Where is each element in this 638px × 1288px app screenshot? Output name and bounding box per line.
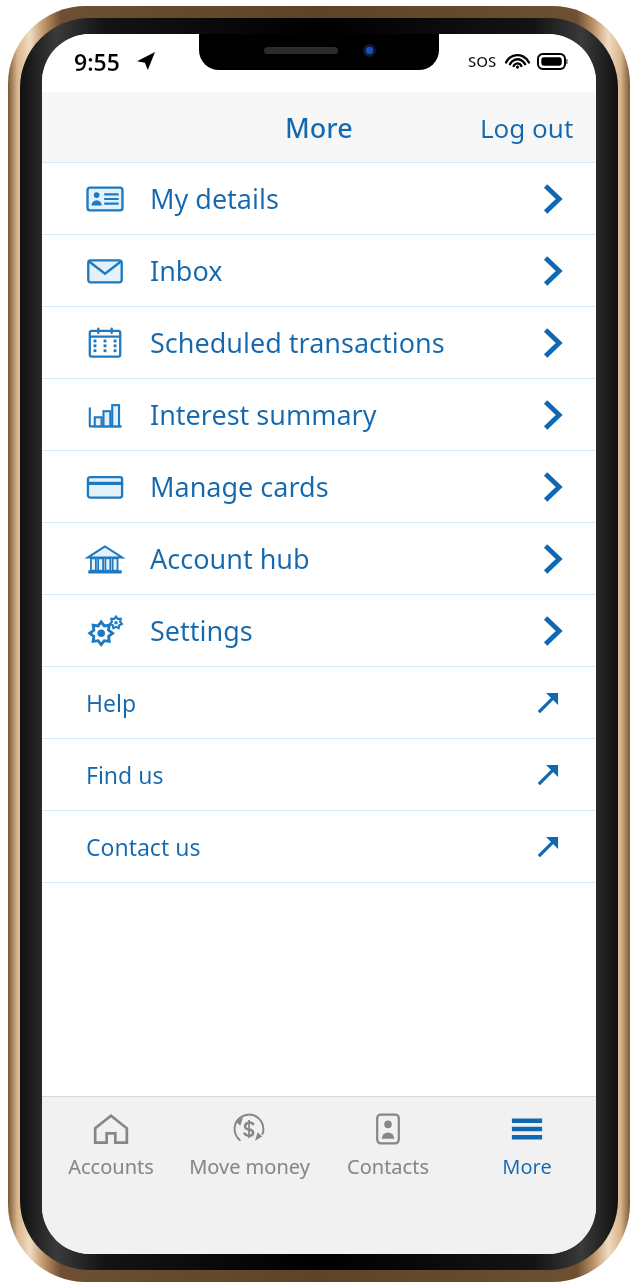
button[interactable]: More — [457, 1097, 596, 1192]
staticText: Accounts — [68, 1153, 154, 1180]
button[interactable]: Account hub — [42, 523, 596, 594]
staticText: Inbox — [150, 252, 544, 289]
staticText: 9:55 — [74, 46, 120, 77]
button[interactable]: Accounts — [42, 1097, 180, 1192]
button[interactable]: Contact us — [42, 811, 596, 882]
staticText: Contacts — [347, 1153, 429, 1180]
button[interactable]: My details — [42, 163, 596, 234]
button[interactable]: Help — [42, 667, 596, 738]
button[interactable]: Log out — [458, 98, 596, 157]
button[interactable]: Interest summary — [42, 379, 596, 450]
button[interactable]: Inbox — [42, 235, 596, 306]
button[interactable]: Scheduled transactions — [42, 307, 596, 378]
staticText: Log out — [480, 110, 574, 145]
button[interactable]: Settings — [42, 595, 596, 666]
button[interactable]: Move money — [180, 1097, 318, 1192]
staticText: Account hub — [150, 540, 544, 577]
staticText: Help — [86, 687, 536, 718]
staticText: My details — [150, 180, 544, 217]
staticText: Scheduled transactions — [150, 324, 544, 361]
staticText: Manage cards — [150, 468, 544, 505]
staticText: Move money — [189, 1153, 310, 1180]
button[interactable]: Contacts — [318, 1097, 457, 1192]
button[interactable]: Find us — [42, 739, 596, 810]
staticText: Find us — [86, 759, 536, 790]
staticText: SOS — [468, 51, 497, 71]
staticText: More — [502, 1153, 552, 1180]
staticText: Interest summary — [150, 396, 544, 433]
staticText: More — [285, 109, 353, 146]
staticText: Settings — [150, 612, 544, 649]
staticText: Contact us — [86, 831, 536, 862]
button[interactable]: Manage cards — [42, 451, 596, 522]
